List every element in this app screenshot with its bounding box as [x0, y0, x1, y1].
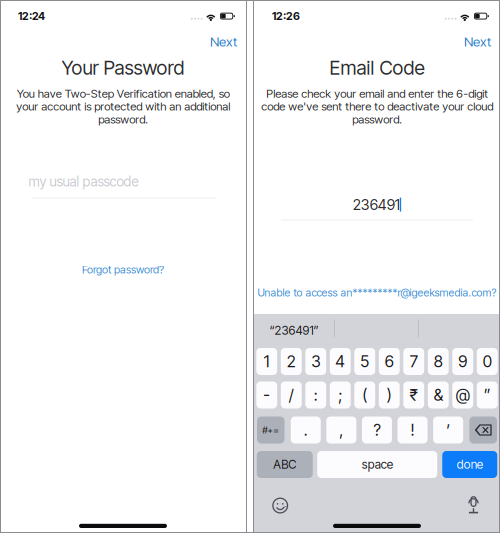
- staticText: space: [362, 457, 393, 472]
- staticText: 7: [410, 352, 418, 371]
- button[interactable]: ,: [326, 416, 356, 443]
- staticText: 12:26: [272, 9, 300, 23]
- staticText: You have Two-Step Verification enabled, …: [16, 87, 230, 126]
- button[interactable]: 8: [428, 348, 449, 375]
- button[interactable]: Forgot password?: [0, 262, 246, 278]
- button[interactable]: &: [428, 381, 449, 408]
- button[interactable]: #+=: [257, 416, 284, 443]
- button[interactable]: Dictation: [467, 496, 479, 515]
- staticText: Your Password: [61, 56, 184, 79]
- button[interactable]: Emoji: [272, 497, 288, 514]
- staticText: :: [314, 385, 318, 405]
- button[interactable]: Next: [451, 32, 500, 51]
- staticText: Next: [464, 34, 491, 50]
- staticText: 4: [335, 352, 345, 371]
- staticText: &: [434, 385, 443, 405]
- button[interactable]: ’: [433, 416, 463, 443]
- staticText: ’: [446, 420, 450, 440]
- button[interactable]: space: [317, 451, 437, 478]
- staticText: “236491”: [269, 323, 318, 338]
- button[interactable]: !: [398, 416, 428, 443]
- button[interactable]: Suggestion: [419, 319, 500, 342]
- staticText: 8: [434, 352, 443, 371]
- button[interactable]: -: [256, 381, 277, 408]
- staticText: Please check your email and enter the 6-…: [261, 87, 493, 126]
- button[interactable]: 1: [256, 348, 277, 375]
- button[interactable]: ”: [477, 381, 498, 408]
- button[interactable]: ₹: [403, 381, 424, 408]
- staticText: ;: [338, 385, 342, 405]
- button[interactable]: 4: [330, 348, 351, 375]
- staticText: Unable to access an*********r@igeeksmedi…: [257, 286, 496, 299]
- button[interactable]: ABC: [257, 451, 313, 478]
- button[interactable]: ): [379, 381, 400, 408]
- staticText: (: [362, 385, 367, 405]
- staticText: .: [304, 420, 308, 440]
- staticText: 6: [385, 352, 394, 371]
- staticText: /: [289, 385, 294, 405]
- staticText: 3: [311, 352, 320, 371]
- staticText: done: [457, 457, 483, 472]
- staticText: 2: [287, 352, 296, 371]
- button[interactable]: ;: [330, 381, 351, 408]
- staticText: Email Code: [329, 56, 424, 79]
- button[interactable]: 7: [403, 348, 424, 375]
- button[interactable]: (: [354, 381, 375, 408]
- staticText: my usual passcode: [28, 173, 138, 190]
- button[interactable]: ?: [362, 416, 392, 443]
- staticText: @: [456, 385, 470, 405]
- button[interactable]: /: [281, 381, 302, 408]
- staticText: 9: [458, 352, 467, 371]
- button[interactable]: .: [291, 416, 321, 443]
- button[interactable]: “236491”: [254, 319, 334, 342]
- button[interactable]: :: [305, 381, 326, 408]
- staticText: ₹: [410, 385, 418, 405]
- staticText: 1: [264, 352, 270, 371]
- staticText: 12:24: [18, 9, 45, 23]
- staticText: ,: [339, 420, 343, 440]
- button[interactable]: Delete: [469, 416, 497, 443]
- staticText: ”: [484, 385, 491, 405]
- staticText: ABC: [273, 457, 296, 472]
- button[interactable]: done: [442, 451, 497, 478]
- staticText: 236491: [353, 196, 400, 213]
- staticText: ?: [373, 420, 380, 440]
- staticText: 0: [483, 352, 492, 371]
- button[interactable]: 3: [305, 348, 326, 375]
- button[interactable]: 2: [281, 348, 302, 375]
- button[interactable]: 0: [477, 348, 498, 375]
- staticText: #+=: [262, 424, 279, 436]
- staticText: -: [263, 385, 270, 405]
- button[interactable]: 6: [379, 348, 400, 375]
- staticText: ): [387, 385, 392, 405]
- button[interactable]: 9: [452, 348, 473, 375]
- button[interactable]: @: [452, 381, 473, 408]
- staticText: Forgot password?: [82, 263, 164, 276]
- staticText: 5: [360, 352, 369, 371]
- button[interactable]: Next: [197, 32, 246, 51]
- staticText: !: [411, 420, 415, 440]
- staticText: Next: [210, 34, 237, 50]
- button[interactable]: Unable to access an*********r@igeeksmedi…: [254, 286, 500, 300]
- button[interactable]: 5: [354, 348, 375, 375]
